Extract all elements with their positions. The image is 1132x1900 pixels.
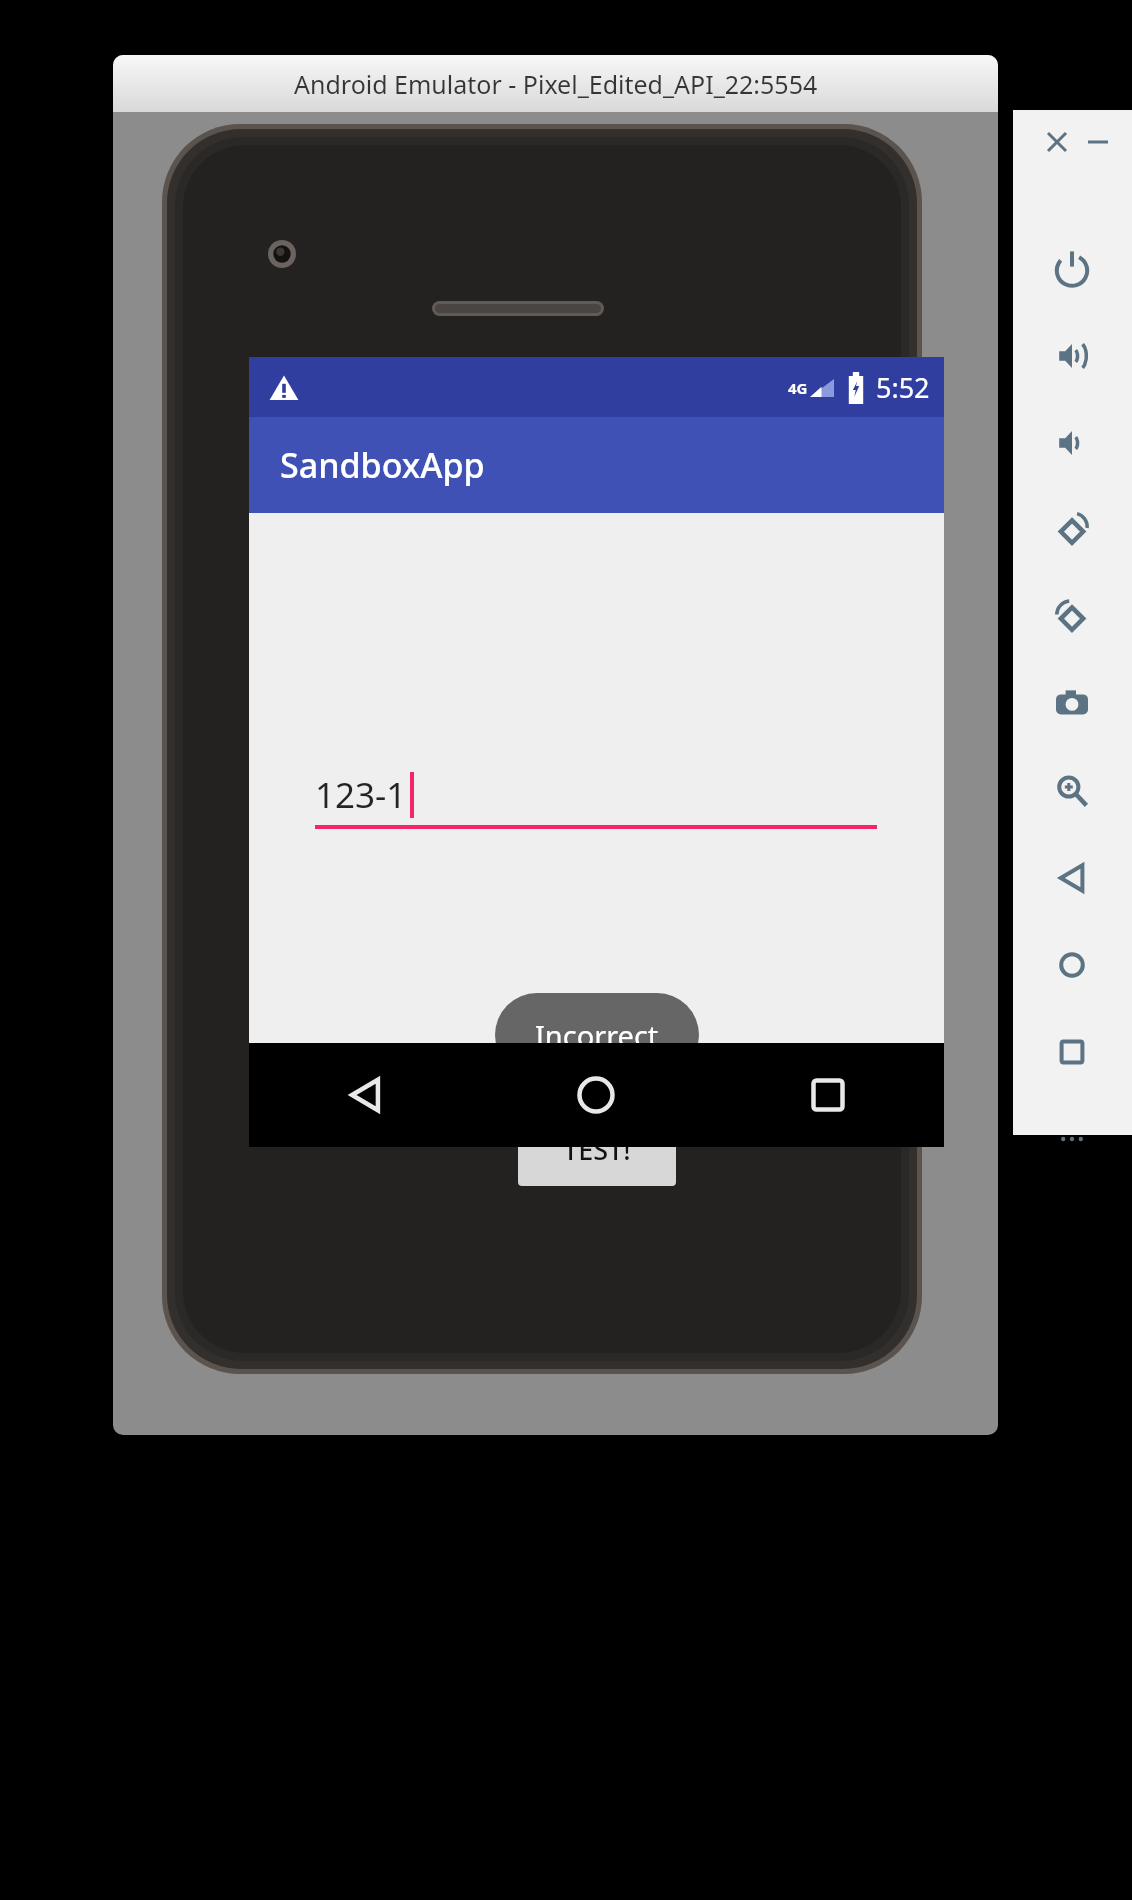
button[interactable]: Home [480,1043,712,1147]
button[interactable]: Rotate left [1043,501,1101,559]
button[interactable]: Volume down [1043,414,1101,472]
button[interactable]: Close [1040,125,1074,159]
button[interactable]: TEST! [518,1113,676,1186]
staticText: Incorrect [535,1016,659,1055]
button[interactable]: Incorrect [495,993,699,1077]
button[interactable]: Back [1043,849,1101,907]
staticText: SandboxApp [280,442,485,488]
staticText: 4G [788,378,808,398]
button[interactable]: Recents [712,1043,944,1147]
button[interactable]: Back [249,1043,480,1147]
staticText: TEST! [563,1131,631,1168]
button[interactable]: Volume up [1043,327,1101,385]
button[interactable]: Home [1043,936,1101,994]
button[interactable]: Zoom [1043,762,1101,820]
button[interactable]: More [1043,1110,1101,1168]
button[interactable]: Rotate right [1043,588,1101,646]
button[interactable]: Recents [1043,1023,1101,1081]
staticText: 5:52 [876,369,930,406]
button[interactable]: Minimize [1081,125,1115,159]
button[interactable]: Power [1043,240,1101,298]
button[interactable]: 123-1 [315,771,877,829]
button[interactable]: Screenshot [1043,675,1101,733]
staticText: Android Emulator - Pixel_Edited_API_22:5… [294,67,818,101]
staticText: 123-1 [315,771,407,819]
